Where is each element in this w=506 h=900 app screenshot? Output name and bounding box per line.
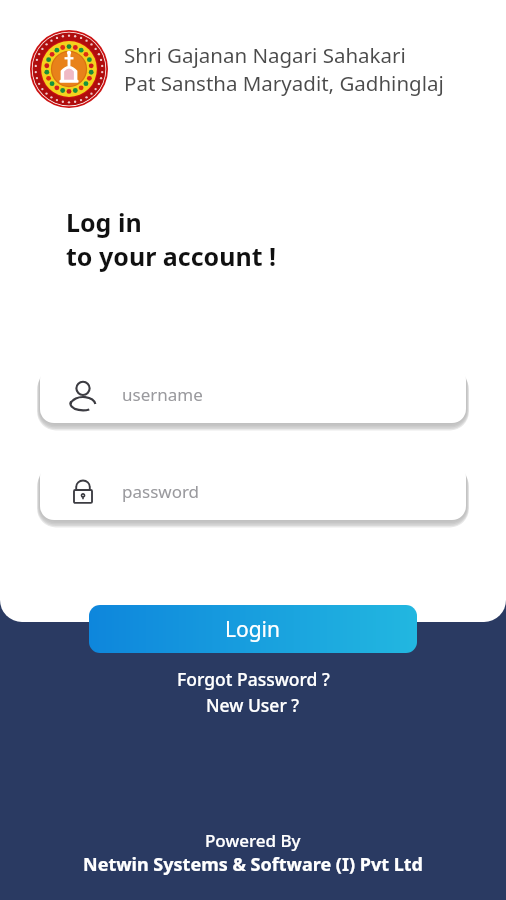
button[interactable]: username field: [40, 366, 466, 423]
staticText: Shri Gajanan Nagari Sahakari: [124, 41, 406, 69]
staticText: Forgot Password ?: [177, 667, 330, 691]
staticText: Login: [225, 615, 281, 644]
staticText: password: [122, 480, 200, 503]
staticText: to your account !: [66, 239, 277, 273]
staticText: Powered By: [205, 829, 301, 852]
button[interactable]: Forgot Password ?: [167, 666, 340, 692]
staticText: New User ?: [206, 693, 300, 717]
button[interactable]: password field: [40, 463, 466, 520]
button[interactable]: Login: [89, 605, 417, 653]
staticText: username: [122, 383, 203, 406]
staticText: Pat Sanstha Maryadit, Gadhinglaj: [124, 69, 444, 97]
staticText: Log in: [66, 205, 142, 239]
button[interactable]: New User ?: [196, 692, 310, 718]
staticText: Netwin Systems & Software (I) Pvt Ltd: [83, 852, 423, 877]
